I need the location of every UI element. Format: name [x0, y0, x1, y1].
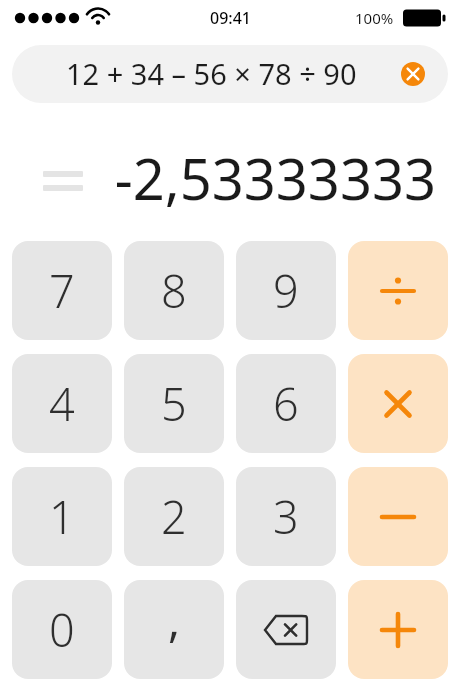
staticText: -2,53333333	[114, 140, 436, 216]
staticText: 3	[273, 486, 299, 547]
button[interactable]: ,	[124, 580, 224, 679]
staticText: 6	[273, 373, 299, 434]
staticText: 7	[49, 260, 75, 321]
button[interactable]: Minus	[348, 467, 448, 566]
staticText: 1	[49, 486, 75, 547]
button[interactable]: 6	[236, 354, 336, 453]
staticText: 12 + 34 – 56 × 78 ÷ 90	[66, 54, 357, 93]
button[interactable]: 12 + 34 – 56 × 78 ÷ 90	[12, 45, 448, 103]
button[interactable]: 4	[12, 354, 112, 453]
button[interactable]: 5	[124, 354, 224, 453]
staticText: ,	[168, 589, 181, 650]
staticText: 09:41	[210, 7, 251, 29]
button[interactable]: 3	[236, 467, 336, 566]
staticText: 8	[161, 260, 187, 321]
staticText: 0	[49, 599, 75, 660]
staticText: 5	[161, 373, 187, 434]
button[interactable]: 9	[236, 241, 336, 340]
button[interactable]: 2	[124, 467, 224, 566]
button[interactable]: Clear expression	[401, 62, 425, 86]
button[interactable]: 8	[124, 241, 224, 340]
button[interactable]: Multiply	[348, 354, 448, 453]
staticText: 4	[49, 373, 75, 434]
button[interactable]: Backspace	[236, 580, 336, 679]
button[interactable]: Plus	[348, 580, 448, 679]
staticText: 100%	[355, 8, 394, 28]
button[interactable]: 7	[12, 241, 112, 340]
button[interactable]: 1	[12, 467, 112, 566]
button[interactable]: Divide	[348, 241, 448, 340]
button[interactable]: 0	[12, 580, 112, 679]
staticText: 2	[161, 486, 187, 547]
staticText: 9	[273, 260, 299, 321]
